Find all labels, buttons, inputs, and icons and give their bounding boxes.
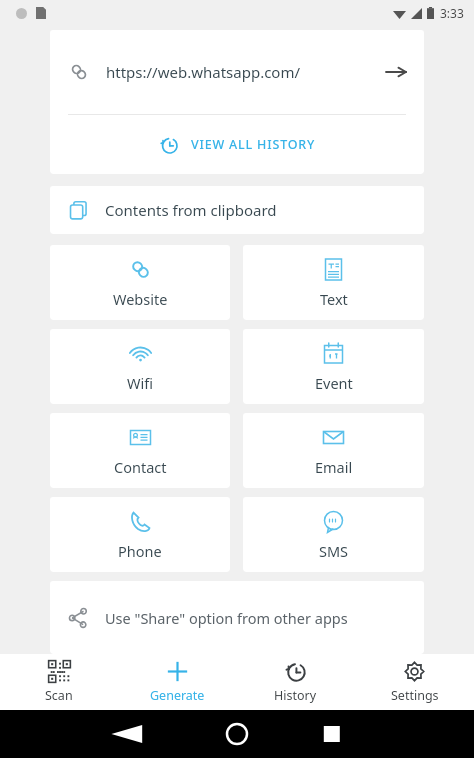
staticText: Event xyxy=(315,373,353,393)
staticText: Scan xyxy=(45,687,73,704)
button[interactable]: Phone xyxy=(50,497,230,572)
button[interactable]: Contents from clipboard xyxy=(50,186,424,234)
button[interactable]: Event xyxy=(243,329,424,404)
staticText: Contact xyxy=(114,457,167,477)
button[interactable]: VIEW ALL HISTORY xyxy=(50,115,424,174)
staticText: 3:33 xyxy=(440,5,464,21)
button[interactable]: Scan xyxy=(0,654,118,710)
staticText: Generate xyxy=(150,687,205,704)
other: Go xyxy=(386,62,406,82)
staticText: Phone xyxy=(118,541,162,561)
button[interactable]: SMS xyxy=(243,497,424,572)
button[interactable]: Settings xyxy=(355,654,474,710)
staticText: Wifi xyxy=(127,373,153,393)
button[interactable]: History xyxy=(236,654,355,710)
staticText: Email xyxy=(315,457,353,477)
button[interactable]: Generate xyxy=(118,654,236,710)
staticText: Settings xyxy=(391,687,439,704)
button[interactable]: https://web.whatsapp.com/ xyxy=(50,30,424,174)
staticText: Contents from clipboard xyxy=(105,200,277,220)
button[interactable]: Use "Share" option from other apps xyxy=(50,581,424,654)
staticText: History xyxy=(274,687,317,704)
staticText: Text xyxy=(320,289,348,309)
staticText: SMS xyxy=(319,541,349,561)
staticText: Website xyxy=(113,289,168,309)
button[interactable]: Website xyxy=(50,245,230,320)
button[interactable]: Contact xyxy=(50,413,230,488)
button[interactable]: Wifi xyxy=(50,329,230,404)
button[interactable]: Text xyxy=(243,245,424,320)
staticText: https://web.whatsapp.com/ xyxy=(106,62,378,82)
staticText: VIEW ALL HISTORY xyxy=(191,136,316,153)
button[interactable]: Email xyxy=(243,413,424,488)
staticText: Use "Share" option from other apps xyxy=(105,608,348,628)
